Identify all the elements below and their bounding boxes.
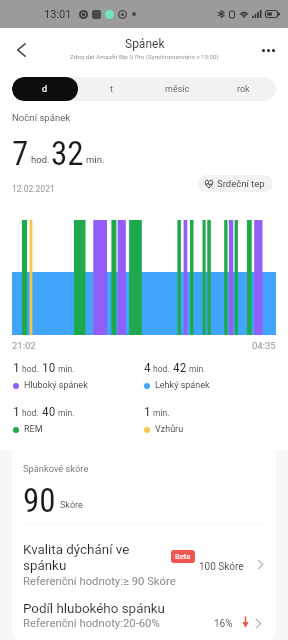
staticText: Spánek: [125, 37, 165, 51]
button[interactable]: Back: [5, 34, 37, 66]
staticText: min.: [189, 364, 206, 374]
staticText: 7: [12, 134, 29, 173]
button[interactable]: t: [78, 77, 144, 101]
staticText: hod.: [31, 154, 50, 165]
staticText: min.: [58, 408, 75, 418]
button[interactable]: Srdeční tep: [198, 175, 273, 192]
staticText: Zdroj dat Amazfit Bip U Pro (Synchronizo…: [70, 53, 219, 60]
button[interactable]: d: [12, 77, 78, 101]
staticText: t: [110, 84, 113, 95]
staticText: hod.: [153, 364, 170, 374]
staticText: 40: [42, 403, 56, 419]
staticText: 1: [144, 403, 151, 419]
staticText: 16%: [214, 618, 233, 630]
staticText: Kvalita dýchání ve spánku: [23, 542, 130, 574]
staticText: rok: [237, 84, 250, 95]
staticText: 100 Skóre: [199, 561, 244, 573]
staticText: 1: [13, 403, 20, 419]
staticText: 42: [173, 359, 187, 375]
button[interactable]: měsíc: [144, 77, 210, 101]
staticText: 13:01: [44, 8, 72, 21]
staticText: min.: [86, 154, 105, 165]
staticText: Srdeční tep: [217, 178, 265, 189]
staticText: hod.: [22, 408, 39, 418]
staticText: 12.02.2021: [12, 184, 55, 194]
button[interactable]: rok: [210, 77, 276, 101]
staticText: Referenční hodnoty:≥ 90 Skóre: [23, 575, 176, 588]
staticText: Referenční hodnoty:20-60%: [23, 617, 160, 630]
staticText: 04:35: [252, 340, 276, 351]
staticText: Podíl hlubokého spánku: [23, 601, 165, 617]
staticText: 4: [144, 359, 151, 375]
staticText: hod.: [22, 364, 39, 374]
staticText: Skóre: [60, 500, 83, 511]
staticText: 90: [23, 481, 56, 520]
staticText: d: [42, 84, 48, 95]
button[interactable]: More options: [252, 34, 284, 66]
staticText: Spánkové skóre: [23, 463, 89, 474]
staticText: Hluboký spánek: [24, 380, 88, 391]
staticText: měsíc: [165, 84, 190, 95]
staticText: Vzhůru: [155, 424, 184, 435]
staticText: 21:02: [12, 340, 36, 351]
staticText: Noční spánek: [12, 112, 71, 123]
staticText: min.: [58, 364, 75, 374]
staticText: Beta: [175, 552, 191, 561]
staticText: Lehký spánek: [155, 380, 210, 391]
staticText: 10: [42, 359, 56, 375]
staticText: 32: [51, 134, 84, 173]
staticText: min.: [153, 408, 170, 418]
button[interactable]: Kvalita dýchání ve spánku: [12, 524, 276, 588]
staticText: REM: [24, 424, 43, 435]
staticText: 1: [13, 359, 20, 375]
button[interactable]: Podíl hlubokého spánku: [12, 582, 276, 640]
